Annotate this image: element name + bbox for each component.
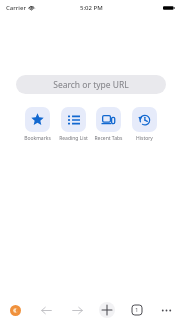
button[interactable]: Forward — [68, 301, 86, 319]
staticText: 1 — [135, 306, 139, 314]
button[interactable]: Tabs — [128, 301, 146, 319]
button[interactable]: Reading List — [57, 107, 90, 142]
staticText: History — [136, 135, 153, 142]
staticText: Bookmarks — [24, 135, 51, 142]
staticText: Reading List — [59, 135, 88, 142]
staticText: Recent Tabs — [94, 135, 123, 142]
button[interactable]: Search or type URL — [16, 75, 166, 94]
button[interactable]: More — [157, 301, 175, 319]
button[interactable]: History — [128, 107, 161, 142]
staticText: 5:02 PM — [80, 4, 103, 12]
button[interactable]: Recent Tabs — [92, 107, 125, 142]
button[interactable]: Back — [37, 301, 55, 319]
staticText: Carrier — [6, 4, 26, 12]
button[interactable]: Bookmarks — [21, 107, 54, 142]
button[interactable]: Tracking protection — [6, 301, 24, 319]
button[interactable]: New tab — [98, 301, 116, 319]
staticText: Search or type URL — [53, 79, 129, 91]
